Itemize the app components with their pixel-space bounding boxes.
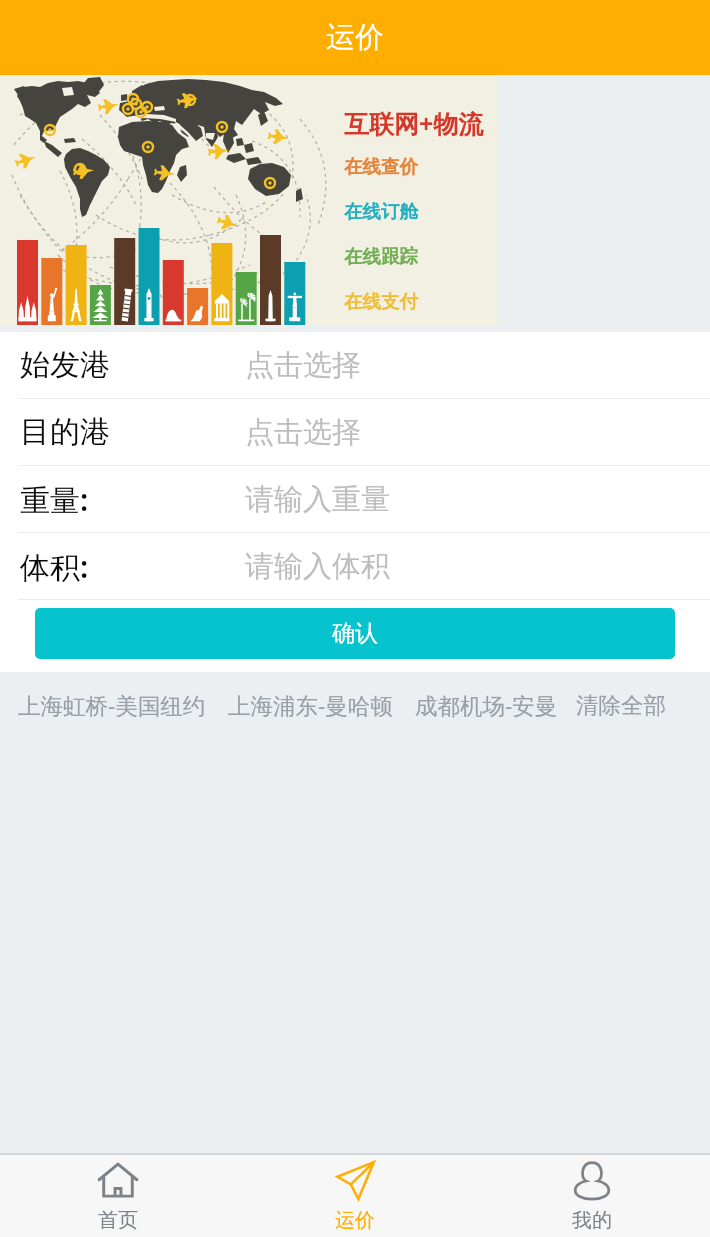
staticText: 清除全部: [576, 691, 666, 719]
staticText: 确认: [332, 619, 378, 648]
staticText: 在线支付: [344, 290, 418, 313]
other: 我的: [571, 1160, 613, 1202]
other: 首页: [97, 1160, 139, 1202]
staticText: 在线订舱: [344, 200, 418, 223]
staticText: 点击选择: [245, 414, 361, 451]
staticText: 我的: [572, 1208, 612, 1233]
button[interactable]: 成都机场-安曼: [415, 690, 558, 721]
button[interactable]: 上海浦东-曼哈顿: [228, 690, 393, 721]
staticText: 在线查价: [344, 155, 418, 178]
staticText: 运价: [335, 1208, 375, 1233]
button[interactable]: 目的港: [0, 399, 710, 465]
staticText: 运价: [326, 19, 384, 56]
other: 运价: [334, 1160, 376, 1202]
staticText: 请输入体积: [245, 548, 390, 585]
staticText: 请输入重量: [245, 481, 390, 518]
button[interactable]: 我的: [473, 1159, 710, 1233]
staticText: 始发港: [20, 346, 110, 384]
staticText: 点击选择: [245, 347, 361, 384]
staticText: 互联网+物流: [344, 106, 484, 140]
staticText: 上海浦东-曼哈顿: [228, 690, 393, 721]
staticText: 上海虹桥-美国纽约: [18, 690, 206, 721]
button[interactable]: 重量:: [0, 466, 710, 532]
staticText: 体积:: [20, 546, 89, 587]
staticText: 重量:: [20, 479, 89, 520]
staticText: 在线跟踪: [344, 245, 418, 268]
button[interactable]: 上海虹桥-美国纽约: [18, 690, 206, 721]
staticText: 首页: [98, 1208, 138, 1233]
button[interactable]: 首页: [0, 1159, 236, 1233]
button[interactable]: 始发港: [0, 332, 710, 398]
button[interactable]: 确认: [35, 608, 675, 659]
staticText: 成都机场-安曼: [415, 690, 558, 721]
button[interactable]: 体积:: [0, 533, 710, 599]
staticText: 目的港: [20, 413, 110, 451]
button[interactable]: 运价: [236, 1159, 473, 1233]
button[interactable]: 清除全部: [576, 691, 666, 719]
